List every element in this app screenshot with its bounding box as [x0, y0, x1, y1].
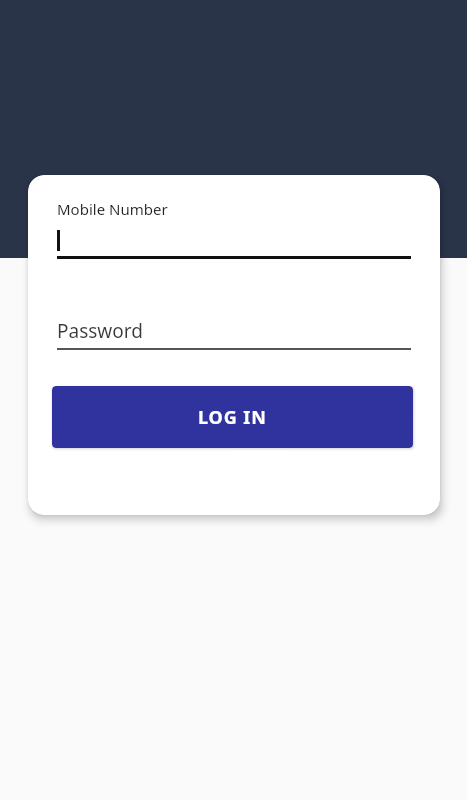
button[interactable]: LOG IN — [52, 386, 413, 448]
staticText: Mobile Number — [57, 199, 168, 219]
staticText: Password — [57, 318, 143, 344]
staticText: LOG IN — [198, 405, 267, 430]
